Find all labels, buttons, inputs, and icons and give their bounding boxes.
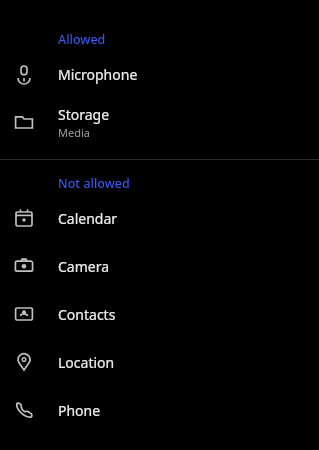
staticText: Calendar (58, 209, 118, 228)
staticText: Location (58, 353, 115, 372)
staticText: Microphone (58, 65, 138, 84)
other: Location (12, 350, 36, 374)
other: Camera (12, 254, 36, 278)
button[interactable]: Location (0, 338, 319, 386)
button[interactable]: Microphone (0, 50, 319, 98)
button[interactable]: Calendar (0, 194, 319, 242)
button[interactable]: Camera (0, 242, 319, 290)
staticText: Allowed (58, 31, 106, 48)
staticText: Contacts (58, 305, 116, 324)
button[interactable]: Storage (0, 98, 319, 146)
staticText: Camera (58, 257, 110, 276)
button[interactable]: Contacts (0, 290, 319, 338)
other: Calendar (12, 206, 36, 230)
staticText: Phone (58, 401, 101, 420)
button[interactable]: Phone (0, 386, 319, 434)
other: Phone (12, 398, 36, 422)
other: Contacts (12, 302, 36, 326)
other: Microphone (12, 62, 36, 86)
staticText: Not allowed (58, 175, 130, 192)
staticText: Storage (58, 105, 110, 124)
staticText: Media (58, 125, 90, 140)
other: Storage (12, 110, 36, 134)
